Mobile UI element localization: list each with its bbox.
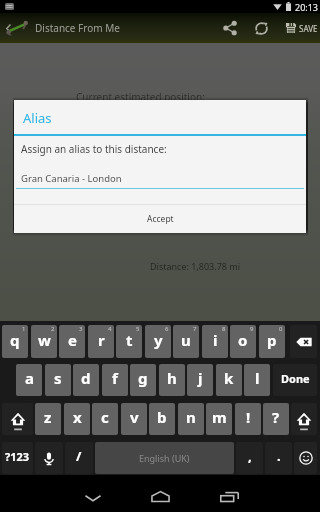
button[interactable]: g xyxy=(130,364,156,396)
button[interactable]: Done xyxy=(273,364,317,396)
staticText: 7 xyxy=(193,325,197,333)
button[interactable]: q xyxy=(2,325,28,358)
staticText: l xyxy=(255,368,260,388)
button[interactable]: a xyxy=(16,364,42,396)
staticText: 2 xyxy=(51,325,55,333)
button[interactable]: w xyxy=(31,325,57,358)
staticText: k xyxy=(224,368,234,388)
button[interactable]: x xyxy=(64,403,90,435)
staticText: x xyxy=(73,407,82,427)
button[interactable]: ? xyxy=(263,403,289,435)
button[interactable]: / xyxy=(65,442,93,474)
button[interactable]: , xyxy=(236,442,263,474)
staticText: English (UK) xyxy=(139,452,190,464)
button[interactable]: b xyxy=(149,403,175,435)
staticText: Gran Canaria - London xyxy=(21,172,122,185)
button[interactable]: ?123 xyxy=(2,442,33,474)
staticText: b xyxy=(157,407,167,427)
staticText: m xyxy=(212,407,227,427)
button[interactable]: k xyxy=(216,364,242,396)
staticText: ?123 xyxy=(5,449,30,464)
button[interactable]: Recent apps xyxy=(210,475,248,512)
button[interactable]: j xyxy=(187,364,213,396)
button[interactable]: Shift xyxy=(2,403,33,435)
staticText: ! xyxy=(246,407,251,427)
button[interactable]: n xyxy=(178,403,204,435)
staticText: . xyxy=(277,447,281,465)
staticText: 5 xyxy=(136,325,140,333)
button[interactable]: Backspace xyxy=(290,325,317,358)
staticText: 6 xyxy=(165,325,169,333)
button[interactable]: ! xyxy=(235,403,261,435)
staticText: Assign an alias to this distance: xyxy=(21,142,167,156)
button[interactable]: e xyxy=(59,325,85,358)
button[interactable]: Hide keyboard xyxy=(74,475,112,512)
staticText: a xyxy=(25,368,34,388)
staticText: 0 xyxy=(279,325,283,333)
button[interactable]: Emoji xyxy=(294,442,317,474)
staticText: q xyxy=(10,330,20,350)
staticText: Alias xyxy=(23,109,52,127)
button[interactable]: o xyxy=(230,325,256,358)
button[interactable]: r xyxy=(88,325,114,358)
button[interactable]: Voice input xyxy=(35,442,63,474)
staticText: o xyxy=(238,330,248,350)
button[interactable]: Accept xyxy=(14,204,306,233)
staticText: e xyxy=(68,330,77,350)
staticText: i xyxy=(213,330,218,350)
button[interactable]: SAVE xyxy=(280,13,318,43)
button[interactable]: h xyxy=(159,364,185,396)
button[interactable]: z xyxy=(35,403,61,435)
button[interactable]: . xyxy=(265,442,292,474)
button[interactable]: v xyxy=(121,403,147,435)
staticText: , xyxy=(248,447,252,465)
staticText: z xyxy=(44,407,52,427)
staticText: 9 xyxy=(250,325,254,333)
staticText: ? xyxy=(272,407,280,427)
staticText: n xyxy=(186,407,196,427)
staticText: v xyxy=(130,407,139,427)
staticText: c xyxy=(101,407,109,427)
staticText: f xyxy=(112,368,118,388)
button[interactable]: Shift xyxy=(291,403,317,435)
staticText: 20:13 xyxy=(295,1,319,13)
button[interactable]: s xyxy=(45,364,71,396)
staticText: y xyxy=(154,330,163,350)
button[interactable]: Share xyxy=(215,13,245,43)
staticText: Done xyxy=(281,371,310,386)
staticText: 4 xyxy=(108,325,112,333)
button[interactable]: i xyxy=(202,325,228,358)
staticText: j xyxy=(198,368,203,388)
button[interactable]: d xyxy=(73,364,99,396)
staticText: SAVE xyxy=(299,23,318,34)
button[interactable]: u xyxy=(173,325,199,358)
staticText: g xyxy=(138,368,148,388)
button[interactable]: Space xyxy=(95,442,234,474)
button[interactable]: t xyxy=(116,325,142,358)
staticText: / xyxy=(76,447,82,465)
button[interactable]: m xyxy=(206,403,232,435)
staticText: 3 xyxy=(79,325,83,333)
button[interactable]: c xyxy=(92,403,118,435)
staticText: r xyxy=(98,330,105,350)
staticText: s xyxy=(54,368,62,388)
staticText: t xyxy=(126,330,133,350)
staticText: h xyxy=(167,368,177,388)
button[interactable]: p xyxy=(259,325,285,358)
button[interactable]: Navigate up xyxy=(0,13,16,43)
button[interactable]: f xyxy=(102,364,128,396)
button[interactable]: Home xyxy=(141,475,179,512)
staticText: 8 xyxy=(222,325,226,333)
staticText: Distance From Me xyxy=(35,21,120,35)
staticText: Current estimated position: xyxy=(76,90,205,104)
button[interactable]: l xyxy=(244,364,270,396)
staticText: w xyxy=(38,330,51,350)
staticText: 1 xyxy=(22,325,26,333)
button[interactable]: y xyxy=(145,325,171,358)
staticText: d xyxy=(81,368,91,388)
staticText: Accept xyxy=(147,213,174,225)
staticText: u xyxy=(181,330,191,350)
staticText: Distance: 1,803.78 mi xyxy=(150,260,241,272)
button[interactable]: Refresh xyxy=(246,13,276,43)
staticText: p xyxy=(267,330,277,350)
